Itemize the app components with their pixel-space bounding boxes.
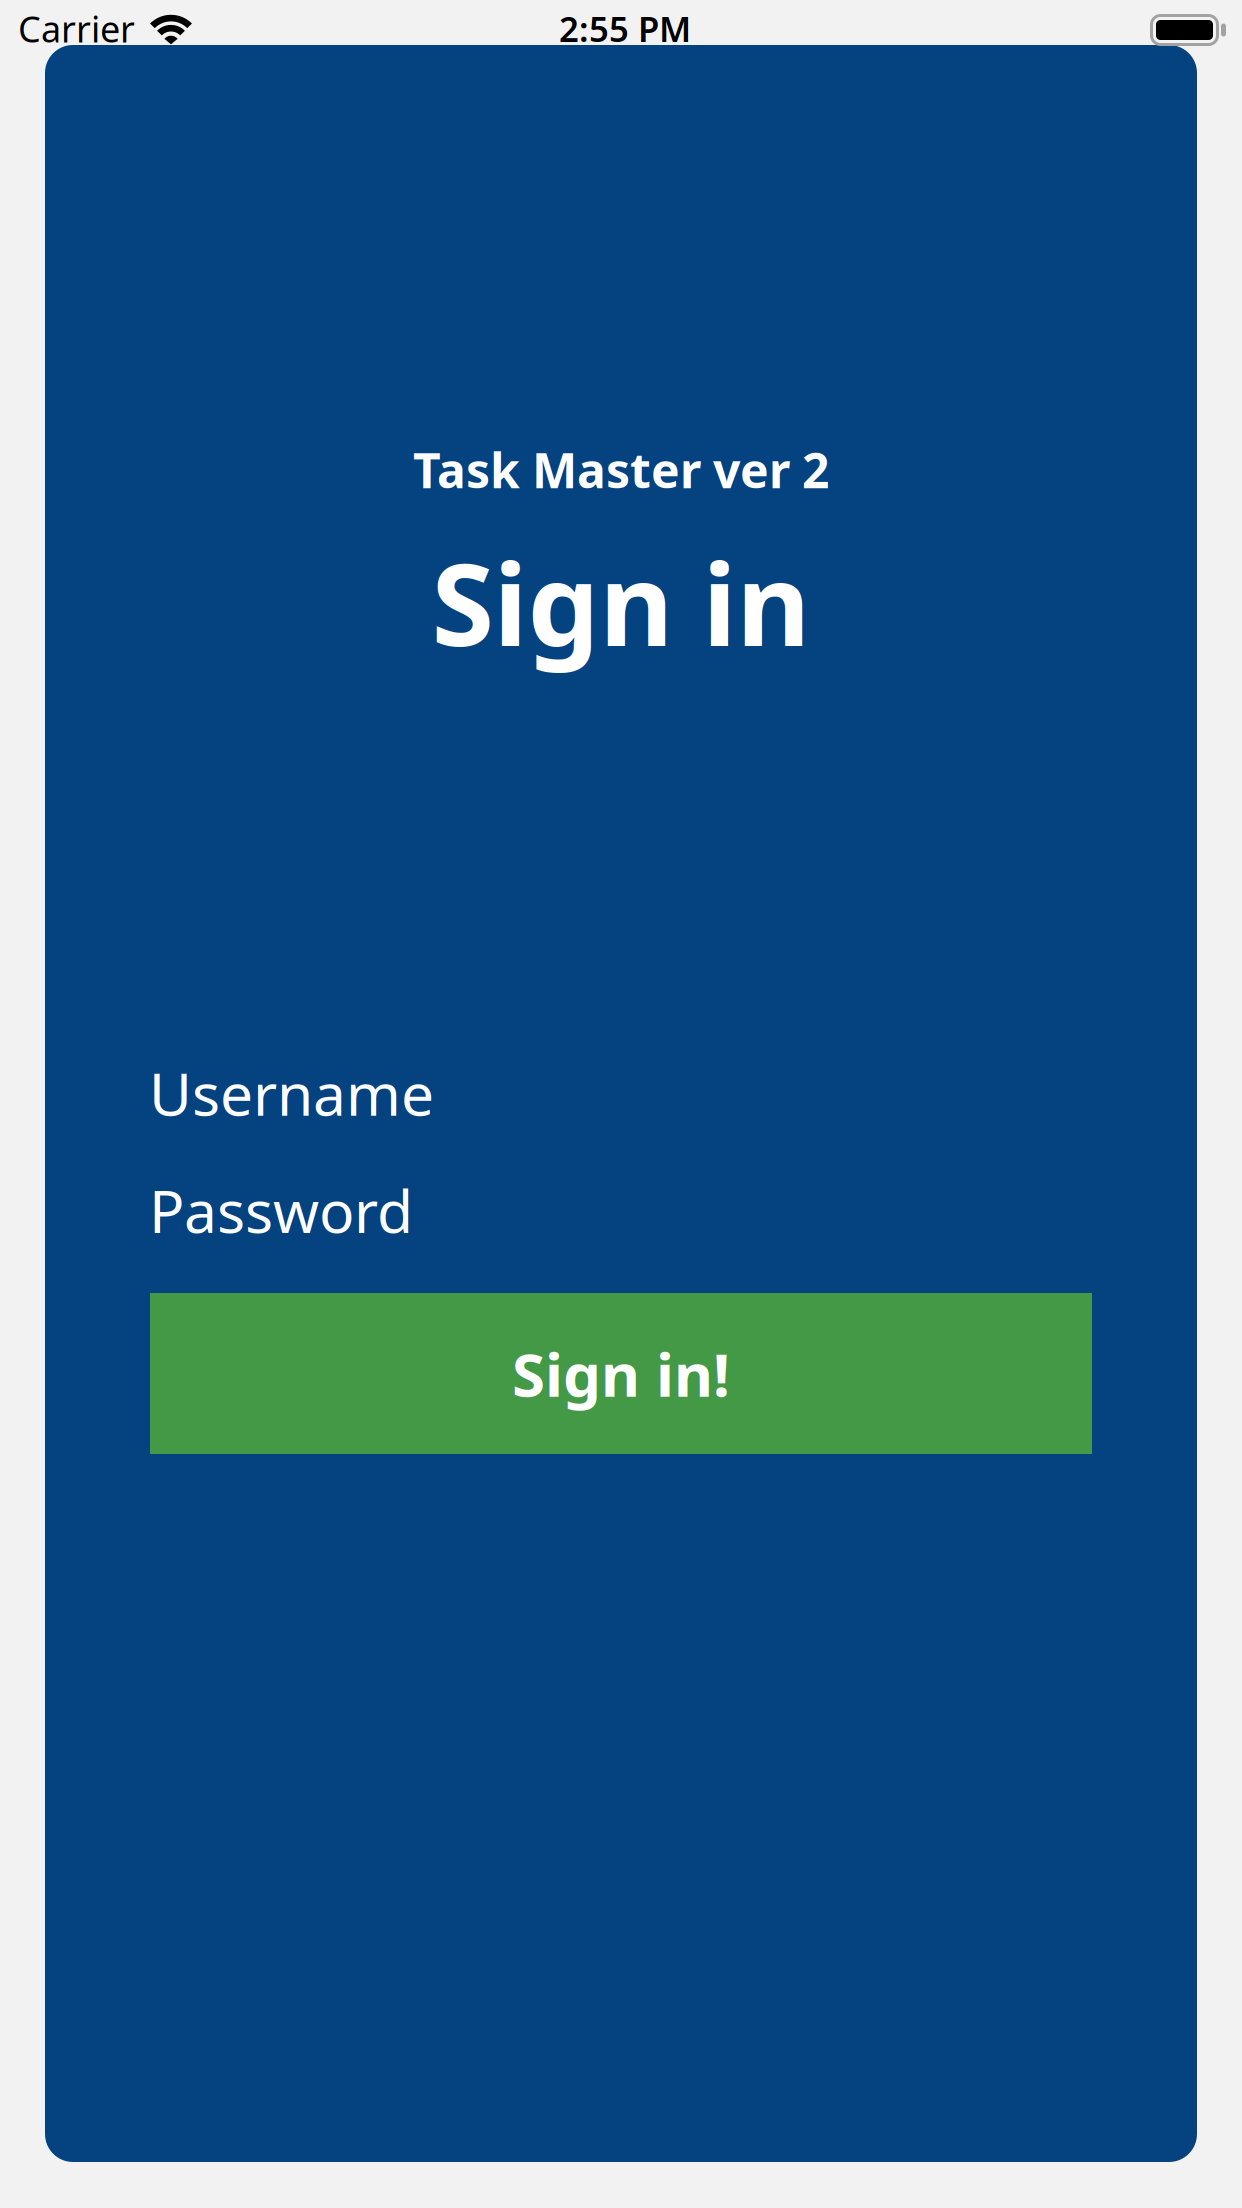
secureTextField[interactable]: Password	[45, 1171, 1197, 1249]
staticText: Username	[149, 1054, 434, 1132]
staticText: Password	[149, 1171, 413, 1249]
staticText: Carrier	[18, 5, 135, 52]
staticText: Sign in	[431, 527, 810, 677]
staticText: Sign in!	[512, 1334, 730, 1413]
staticText: 2:55 PM	[559, 5, 691, 51]
button[interactable]: Sign in!	[150, 1293, 1092, 1454]
textField[interactable]: Username	[45, 1054, 1197, 1132]
staticText: Task Master ver 2	[413, 438, 829, 501]
